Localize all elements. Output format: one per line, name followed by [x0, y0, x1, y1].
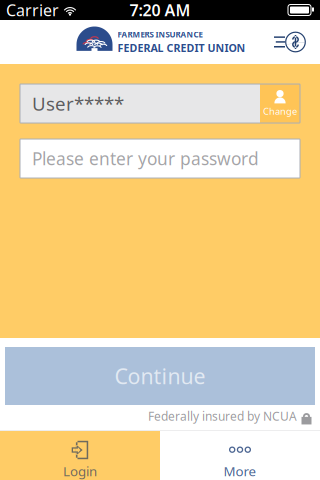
staticText: User*****: [32, 91, 124, 116]
staticText: Continue: [114, 362, 205, 390]
button[interactable]: Login: [0, 431, 160, 480]
button[interactable]: Quick Balance: [268, 20, 312, 64]
button[interactable]: Change user: [260, 84, 300, 123]
staticText: FARMERS INSURANCE: [117, 29, 202, 40]
button[interactable]: More: [160, 431, 320, 480]
staticText: Login: [63, 462, 97, 480]
staticText: FEDERAL CREDIT UNION: [117, 41, 245, 55]
staticText: Please enter your password: [32, 147, 259, 170]
staticText: Federally insured by NCUA: [148, 408, 297, 424]
staticText: 7:20 AM: [129, 0, 190, 21]
staticText: Change: [263, 105, 297, 117]
staticText: Carrier: [6, 0, 59, 21]
button[interactable]: Continue: [5, 347, 315, 405]
staticText: More: [223, 462, 256, 480]
